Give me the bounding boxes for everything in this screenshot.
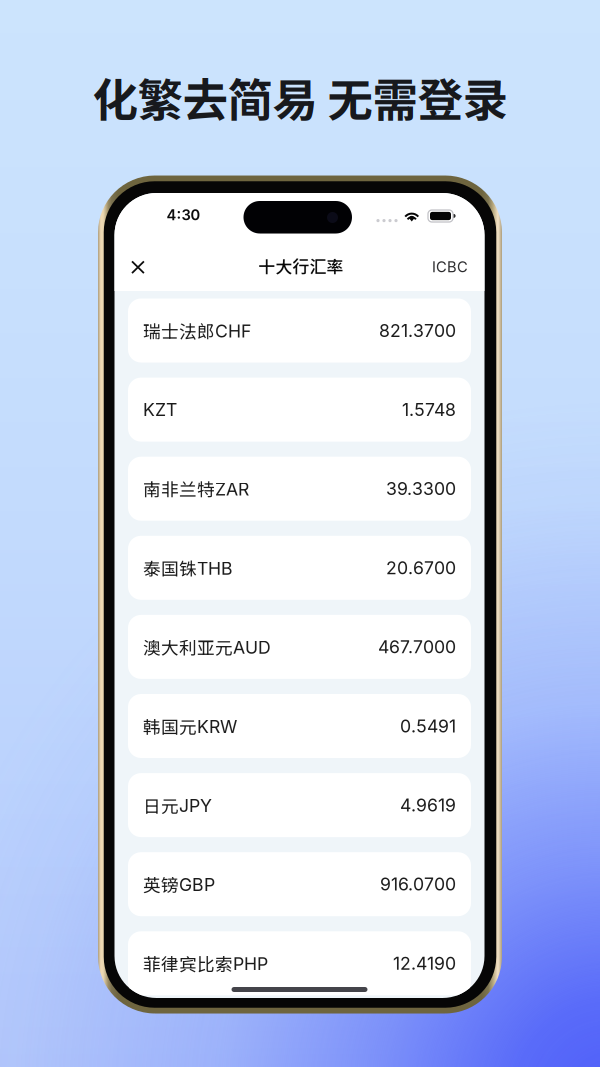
button[interactable]: 澳大利亚元AUD bbox=[128, 615, 471, 679]
staticText: 十大行汇率 bbox=[258, 254, 343, 278]
staticText: 澳大利亚元AUD bbox=[143, 634, 271, 660]
staticText: 英镑GBP bbox=[143, 871, 215, 897]
button[interactable]: Close bbox=[117, 245, 157, 285]
button[interactable]: 菲律宾比索PHP bbox=[128, 931, 471, 995]
button[interactable]: 瑞士法郎CHF bbox=[128, 298, 471, 362]
staticText: 916.0700 bbox=[380, 874, 456, 895]
button[interactable]: 韩国元KRW bbox=[128, 694, 471, 758]
staticText: ICBC bbox=[432, 258, 468, 276]
staticText: 467.7000 bbox=[378, 636, 456, 658]
staticText: 日元JPY bbox=[143, 792, 212, 818]
staticText: 泰国铢THB bbox=[143, 555, 233, 581]
button[interactable]: 南非兰特ZAR bbox=[128, 457, 471, 521]
staticText: 南非兰特ZAR bbox=[143, 476, 249, 501]
staticText: 4:30 bbox=[166, 206, 200, 224]
staticText: 菲律宾比索PHP bbox=[143, 951, 268, 976]
button[interactable]: 日元JPY bbox=[128, 773, 471, 837]
staticText: 化繁去简易 无需登录 bbox=[92, 64, 507, 130]
staticText: 0.5491 bbox=[400, 715, 456, 737]
button[interactable]: ICBC bbox=[420, 247, 480, 287]
button[interactable]: KZT bbox=[128, 378, 471, 442]
staticText: 12.4190 bbox=[393, 953, 456, 974]
staticText: 821.3700 bbox=[379, 320, 456, 341]
staticText: 韩国元KRW bbox=[143, 713, 237, 739]
button[interactable]: 英镑GBP bbox=[128, 852, 471, 916]
staticText: 4.9619 bbox=[400, 794, 456, 816]
button[interactable]: 泰国铢THB bbox=[128, 536, 471, 600]
staticText: 39.3300 bbox=[386, 478, 456, 499]
staticText: 瑞士法郎CHF bbox=[143, 318, 251, 343]
staticText: KZT bbox=[143, 399, 177, 420]
staticText: 20.6700 bbox=[386, 557, 456, 578]
staticText: 1.5748 bbox=[402, 399, 456, 420]
